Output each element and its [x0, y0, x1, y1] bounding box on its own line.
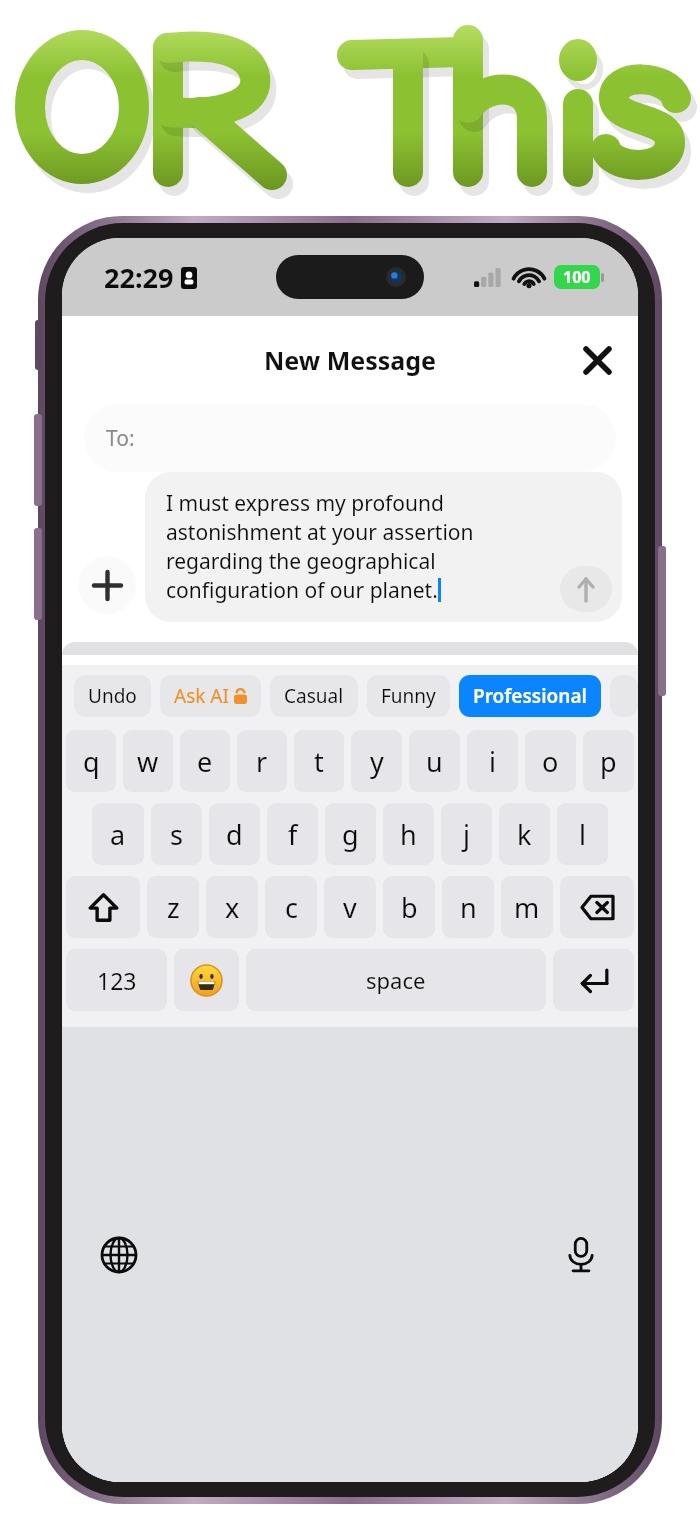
button[interactable]: Shift — [66, 876, 140, 938]
button[interactable]: Casual — [270, 675, 358, 717]
button[interactable]: Professional — [459, 675, 601, 717]
staticText: g — [342, 816, 359, 853]
button[interactable]: v — [324, 876, 376, 938]
button[interactable]: Add attachment — [78, 556, 136, 614]
button[interactable]: k — [499, 803, 550, 865]
staticText: f — [288, 816, 298, 853]
staticText: q — [83, 743, 100, 780]
button[interactable]: n — [442, 876, 494, 938]
staticText: k — [517, 816, 532, 853]
button[interactable]: Backspace — [560, 876, 634, 938]
staticText: r — [256, 743, 268, 780]
staticText: h — [400, 816, 417, 853]
button[interactable]: o — [525, 730, 576, 792]
button[interactable]: z — [147, 876, 199, 938]
staticText: y — [370, 743, 384, 780]
staticText: m — [514, 889, 540, 926]
staticText: p — [600, 743, 617, 780]
button[interactable]: Funny — [367, 675, 450, 717]
staticText: Undo — [88, 683, 137, 709]
staticText: c — [285, 889, 298, 926]
button[interactable]: j — [441, 803, 492, 865]
button[interactable]: l — [557, 803, 608, 865]
staticText: 100 — [563, 266, 591, 288]
button[interactable]: r — [237, 730, 287, 792]
button[interactable]: y — [351, 730, 402, 792]
button[interactable]: space — [246, 949, 546, 1011]
button[interactable]: q — [66, 730, 116, 792]
button[interactable]: Ask AI — [160, 675, 261, 717]
button[interactable]: t — [294, 730, 344, 792]
button[interactable]: Dictate — [558, 1232, 604, 1278]
button[interactable]: s — [151, 803, 202, 865]
staticText: o — [542, 743, 559, 780]
button[interactable]: I must express my profound — [145, 472, 622, 622]
staticText: astonishment at your assertion — [166, 518, 474, 547]
button[interactable]: p — [583, 730, 634, 792]
staticText: v — [343, 889, 357, 926]
staticText: e — [197, 743, 213, 780]
button[interactable]: x — [206, 876, 258, 938]
staticText: regarding the geographical — [166, 547, 436, 576]
button[interactable]: Close — [568, 331, 626, 389]
staticText: Funny — [381, 683, 436, 709]
staticText: u — [426, 743, 443, 780]
button[interactable]: 123 — [66, 949, 167, 1011]
button[interactable]: d — [209, 803, 260, 865]
button[interactable]: f — [267, 803, 318, 865]
button[interactable]: Send — [560, 566, 612, 612]
button[interactable]: c — [265, 876, 317, 938]
staticText: w — [137, 743, 159, 780]
staticText: 22:29 — [104, 259, 174, 296]
button[interactable]: Return — [553, 949, 634, 1011]
button[interactable]: Change keyboard — [96, 1232, 142, 1278]
button[interactable]: h — [383, 803, 434, 865]
staticText: Casual — [284, 683, 344, 709]
staticText: configuration of our planet. — [166, 576, 438, 605]
button[interactable]: u — [409, 730, 460, 792]
button[interactable]: i — [467, 730, 518, 792]
staticText: Professional — [473, 683, 587, 709]
button[interactable]: w — [123, 730, 173, 792]
staticText: t — [314, 743, 324, 780]
staticText: n — [460, 889, 477, 926]
staticText: Ask AI — [174, 683, 229, 709]
staticText: s — [170, 816, 183, 853]
button[interactable]: a — [92, 803, 144, 865]
staticText: z — [167, 889, 180, 926]
button[interactable]: e — [180, 730, 230, 792]
button[interactable]: To: — [84, 404, 616, 472]
staticText: l — [579, 816, 586, 853]
staticText: b — [401, 889, 418, 926]
staticText: d — [226, 816, 243, 853]
button[interactable]: m — [501, 876, 553, 938]
staticText: a — [110, 816, 126, 853]
button[interactable]: Undo — [74, 675, 151, 717]
staticText: j — [463, 816, 470, 853]
button[interactable]: g — [325, 803, 376, 865]
staticText: 123 — [97, 965, 137, 996]
staticText: New Message — [264, 343, 436, 377]
button[interactable]: Emoji — [174, 949, 239, 1011]
staticText: i — [489, 743, 496, 780]
staticText: x — [225, 889, 240, 926]
staticText: I must express my profound — [166, 489, 444, 518]
button[interactable]: b — [383, 876, 435, 938]
staticText: space — [366, 965, 426, 995]
staticText: To: — [106, 424, 135, 453]
